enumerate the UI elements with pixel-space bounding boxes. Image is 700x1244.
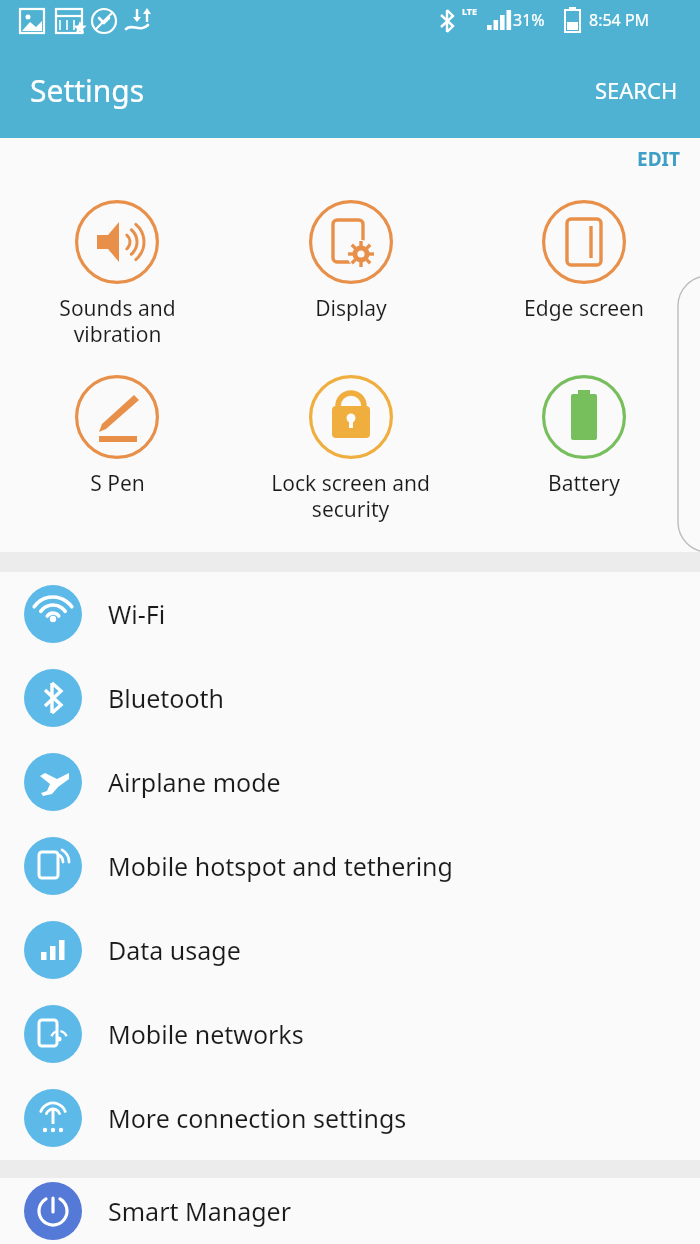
staticText: SEARCH <box>595 75 678 105</box>
button[interactable]: Wi-Fi <box>0 572 700 656</box>
button[interactable]: Display <box>234 196 467 327</box>
button[interactable]: S Pen <box>0 371 234 502</box>
button[interactable]: Bluetooth <box>0 656 700 740</box>
staticText: Bluetooth <box>108 681 225 715</box>
staticText: More connection settings <box>108 1101 407 1135</box>
staticText: S Pen <box>90 469 145 498</box>
button[interactable]: More connection settings <box>0 1076 700 1160</box>
staticText: Mobile hotspot and tethering <box>108 849 453 883</box>
staticText: Battery <box>548 469 620 498</box>
button[interactable]: Battery <box>467 371 700 502</box>
button[interactable]: Airplane mode <box>0 740 700 824</box>
staticText: 8:54 PM <box>589 9 650 31</box>
staticText: Display <box>315 294 387 323</box>
staticText: LTE <box>462 5 478 17</box>
button[interactable]: Data usage <box>0 908 700 992</box>
staticText: Wi-Fi <box>108 597 166 631</box>
button[interactable]: Sounds and vibration <box>0 196 234 353</box>
button[interactable]: SEARCH <box>573 61 700 119</box>
staticText: Data usage <box>108 933 241 967</box>
staticText: Sounds and vibration <box>59 294 176 349</box>
staticText: 31% <box>513 9 545 31</box>
staticText: Lock screen and security <box>271 469 430 524</box>
button[interactable]: Lock screen and security <box>234 371 467 528</box>
button[interactable]: Edge screen <box>467 196 700 327</box>
button[interactable]: Mobile hotspot and tethering <box>0 824 700 908</box>
button[interactable]: Mobile networks <box>0 992 700 1076</box>
staticText: EDIT <box>637 146 680 172</box>
staticText: Airplane mode <box>108 765 281 799</box>
staticText: Mobile networks <box>108 1017 304 1051</box>
button[interactable]: Smart Manager <box>0 1178 700 1244</box>
staticText: Settings <box>30 70 145 111</box>
staticText: Smart Manager <box>108 1194 291 1228</box>
button[interactable]: EDIT <box>617 138 700 180</box>
staticText: Edge screen <box>524 294 644 323</box>
